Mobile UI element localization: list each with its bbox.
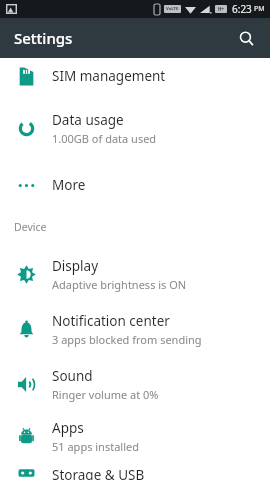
staticText: 3 apps blocked from sending [52, 332, 202, 347]
staticText: VoLTE [166, 6, 179, 12]
staticText: 6:23 [232, 2, 252, 16]
staticText: Data usage [52, 111, 124, 129]
button[interactable]: Display [0, 248, 270, 300]
staticText: Sound [52, 367, 93, 385]
staticText: More [52, 176, 86, 194]
staticText: H+ [218, 6, 225, 12]
staticText: PM [254, 4, 265, 14]
staticText: Ringer volume at 0% [52, 387, 159, 402]
staticText: 51 apps installed [52, 439, 139, 454]
button[interactable]: Apps [0, 410, 270, 462]
button[interactable]: Storage & USB [0, 466, 270, 480]
button[interactable]: Sound [0, 358, 270, 410]
staticText: Storage & USB [52, 466, 145, 480]
staticText: Settings [14, 28, 73, 48]
staticText: 1.00GB of data used [52, 131, 157, 146]
staticText: Apps [52, 419, 84, 437]
button[interactable]: Search [230, 22, 262, 54]
staticText: SIM management [52, 67, 166, 85]
staticText: Notification center [52, 312, 170, 330]
button[interactable]: SIM management [0, 58, 270, 94]
staticText: Display [52, 257, 99, 275]
button[interactable]: Notification center [0, 303, 270, 355]
staticText: Adaptive brightness is ON [52, 277, 187, 292]
staticText: Device [14, 220, 47, 234]
button[interactable]: Data usage [0, 102, 270, 154]
button[interactable]: More [0, 167, 270, 203]
